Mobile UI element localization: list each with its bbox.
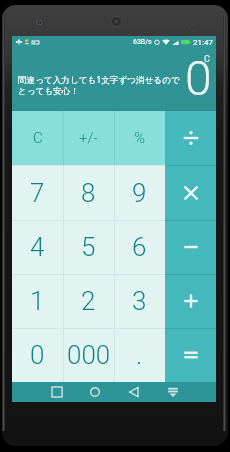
- staticText: 8: [81, 178, 96, 208]
- staticText: C: [33, 129, 43, 147]
- staticText: 4: [30, 232, 45, 262]
- staticText: 9: [132, 178, 147, 208]
- button[interactable]: 000: [63, 328, 114, 382]
- button[interactable]: 2: [63, 274, 114, 328]
- button[interactable]: +/-: [63, 110, 114, 165]
- button[interactable]: Equals: [165, 328, 216, 382]
- button[interactable]: .: [114, 328, 165, 382]
- staticText: とっても安心！: [18, 86, 79, 97]
- staticText: 7: [30, 178, 45, 208]
- staticText: 0: [30, 340, 45, 370]
- staticText: %: [134, 129, 146, 147]
- staticText: +/-: [79, 129, 98, 147]
- button[interactable]: 7: [12, 165, 63, 220]
- button[interactable]: 4: [12, 220, 63, 274]
- button[interactable]: 0: [12, 328, 63, 382]
- button[interactable]: 1: [12, 274, 63, 328]
- staticText: 21:47: [193, 38, 213, 47]
- staticText: 1: [30, 286, 45, 316]
- staticText: 間違って入力しても1文字ずつ消せるので: [18, 74, 180, 86]
- button[interactable]: Recent apps: [41, 382, 73, 402]
- staticText: 6: [132, 232, 147, 262]
- button[interactable]: 3: [114, 274, 165, 328]
- staticText: .: [136, 340, 143, 370]
- button[interactable]: 5: [63, 220, 114, 274]
- button[interactable]: Multiply: [165, 165, 216, 220]
- button[interactable]: C: [12, 110, 63, 165]
- button[interactable]: Hide keyboard: [157, 382, 189, 402]
- staticText: 63B/s: [133, 38, 152, 46]
- staticText: 2: [81, 286, 96, 316]
- staticText: 0: [185, 50, 212, 106]
- button[interactable]: %: [114, 110, 165, 165]
- button[interactable]: 6: [114, 220, 165, 274]
- staticText: 000: [67, 340, 111, 370]
- button[interactable]: 8: [63, 165, 114, 220]
- button[interactable]: Home: [79, 382, 111, 402]
- staticText: 5: [81, 232, 96, 262]
- button[interactable]: Plus: [165, 274, 216, 328]
- staticText: C: [204, 54, 210, 65]
- staticText: 3: [132, 286, 147, 316]
- button[interactable]: Divide: [165, 110, 216, 165]
- button[interactable]: Back: [118, 382, 150, 402]
- button[interactable]: 9: [114, 165, 165, 220]
- button[interactable]: Minus: [165, 220, 216, 274]
